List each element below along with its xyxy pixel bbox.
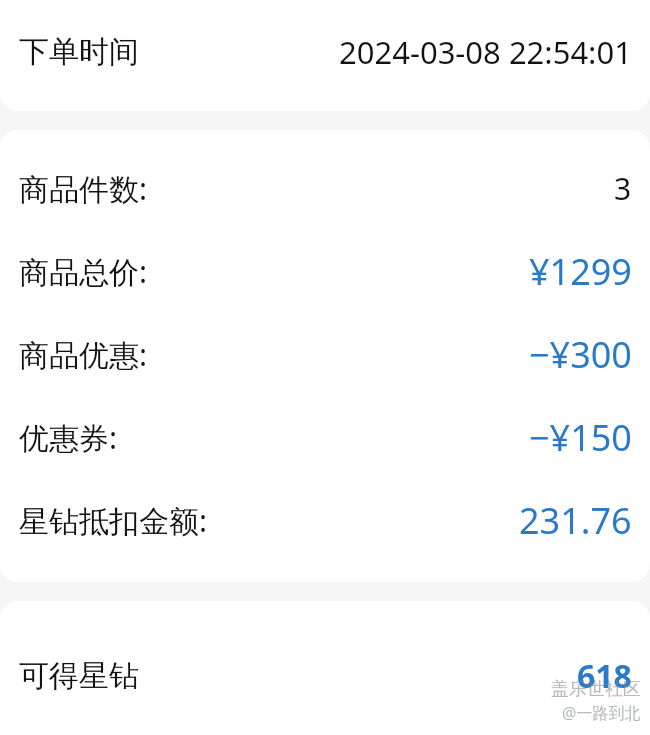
staticText: 3	[614, 168, 632, 209]
staticText: 下单时间	[19, 33, 139, 71]
staticText: ¥1299	[529, 247, 632, 296]
button[interactable]: 优惠券:	[0, 396, 650, 479]
staticText: 商品优惠:	[19, 334, 148, 375]
staticText: 优惠券:	[19, 417, 118, 458]
staticText: −¥300	[529, 330, 632, 379]
button[interactable]: 可得星钻	[0, 601, 650, 735]
staticText: −¥150	[529, 413, 632, 462]
staticText: 可得星钻	[19, 657, 139, 695]
staticText: 盖乐世社区	[551, 678, 641, 701]
staticText: 星钻抵扣金额:	[19, 500, 208, 541]
staticText: @一路到北	[562, 702, 641, 724]
staticText: 商品总价:	[19, 251, 148, 292]
staticText: 2024-03-08 22:54:01	[339, 31, 632, 73]
button[interactable]: 商品优惠:	[0, 313, 650, 396]
button[interactable]: 商品件数:	[0, 147, 650, 230]
button[interactable]: 商品总价:	[0, 230, 650, 313]
staticText: 商品件数:	[19, 168, 148, 209]
staticText: 231.76	[519, 496, 632, 545]
button[interactable]: 下单时间	[0, 0, 650, 111]
button[interactable]: 星钻抵扣金额:	[0, 479, 650, 562]
staticText: 618	[577, 654, 632, 698]
